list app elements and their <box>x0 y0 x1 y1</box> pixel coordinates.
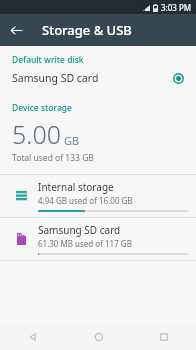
staticText: 4.94 GB used of 16.00 GB <box>38 195 133 206</box>
button[interactable]: Home <box>66 324 131 350</box>
staticText: Total used of 133 GB <box>12 152 94 164</box>
staticText: Samsung SD card <box>38 223 121 237</box>
staticText: Storage & USB <box>42 21 132 39</box>
staticText: Samsung SD card <box>12 71 173 85</box>
button[interactable]: Samsung SD card <box>0 218 196 260</box>
button[interactable]: Recent apps <box>131 324 196 350</box>
button[interactable]: Samsung SD card <box>0 66 196 90</box>
staticText: 61.30 MB used of 117 GB <box>38 238 132 249</box>
button[interactable]: Back <box>0 324 66 350</box>
staticText: 3:03 PM <box>161 2 192 13</box>
button[interactable]: Back <box>0 14 32 46</box>
staticText: GB <box>64 133 80 148</box>
staticText: Default write disk <box>12 54 84 66</box>
staticText: 5.00 <box>12 117 61 151</box>
button[interactable]: Internal storage <box>0 175 196 217</box>
staticText: Device storage <box>12 102 72 114</box>
staticText: Internal storage <box>38 180 114 194</box>
